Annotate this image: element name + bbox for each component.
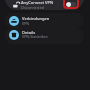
staticText: AnyConnect VPN: [21, 0, 54, 5]
button[interactable]: [5, 13, 84, 28]
staticText: VPN: [22, 21, 30, 26]
staticText: VPN-Statistiken: [22, 34, 48, 39]
staticText: Details: [22, 30, 36, 35]
button[interactable]: Toggle VPN connection: [63, 0, 79, 9]
button[interactable]: [5, 0, 84, 10]
button[interactable]: [5, 28, 84, 44]
staticText: Verbindungen: [22, 16, 50, 21]
staticText: Disconnected: [21, 5, 44, 10]
